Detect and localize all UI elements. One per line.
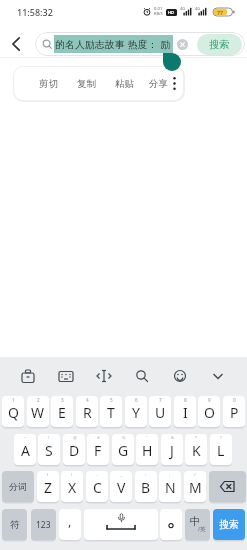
button[interactable]: ; (159, 471, 181, 502)
button[interactable]: ! (38, 434, 60, 465)
button[interactable]: : (135, 471, 157, 502)
button[interactable]: ~ (14, 434, 36, 465)
button[interactable] (17, 365, 39, 387)
button[interactable] (93, 365, 115, 387)
button[interactable]: 0 (223, 396, 245, 427)
button[interactable]: # (87, 434, 109, 465)
button[interactable]: 4 (76, 396, 98, 427)
staticText: C (93, 478, 102, 497)
staticText: 5 (110, 397, 113, 403)
button[interactable]: @ (63, 434, 85, 465)
staticText: KB/S (154, 11, 163, 16)
staticText: 9 (208, 397, 211, 403)
staticText: 符 (10, 519, 20, 531)
staticText: * (195, 435, 198, 441)
staticText: L (217, 441, 225, 460)
button[interactable] (169, 365, 191, 387)
button[interactable]: , (59, 509, 81, 540)
staticText: 1 (12, 397, 15, 403)
button[interactable] (207, 365, 229, 387)
button[interactable]: 分享 (144, 67, 172, 100)
staticText: 6 (135, 397, 138, 403)
staticText: K (192, 441, 201, 460)
button[interactable]: 粘贴 (110, 67, 138, 100)
button[interactable]: * (185, 434, 207, 465)
button[interactable]: 搜索 (197, 34, 242, 55)
staticText: X (68, 478, 77, 497)
button[interactable] (166, 67, 183, 100)
staticText: 3 (61, 397, 64, 403)
button[interactable]: 123 (31, 509, 56, 540)
button[interactable]: 3 (51, 396, 73, 427)
button[interactable] (177, 39, 188, 50)
staticText: 搜索 (209, 38, 230, 51)
staticText: 11:58:32 (17, 6, 53, 18)
staticText: : (145, 472, 147, 478)
button[interactable]: ( (37, 471, 59, 502)
button[interactable] (84, 509, 158, 540)
staticText: H (142, 441, 153, 460)
button[interactable]: & (161, 434, 183, 465)
button[interactable] (160, 509, 182, 540)
button[interactable]: - (86, 471, 108, 502)
staticText: /英 (198, 525, 206, 533)
staticText: 8 (184, 397, 187, 403)
staticText: 粘贴 (115, 78, 134, 90)
button[interactable]: ) (61, 471, 83, 502)
staticText: % (122, 435, 126, 441)
button[interactable]: ? (210, 434, 232, 465)
staticText: 搜索 (219, 518, 239, 531)
staticText: J (170, 441, 174, 460)
staticText: ( (47, 472, 49, 478)
staticText: Z (44, 478, 53, 497)
staticText: P (230, 403, 239, 422)
staticText: O (204, 403, 215, 422)
staticText: 0 (233, 397, 236, 403)
button[interactable]: 2 (27, 396, 49, 427)
staticText: _ (120, 472, 122, 478)
staticText: I (183, 403, 188, 422)
staticText: Y (132, 403, 140, 422)
staticText: R (83, 403, 92, 422)
button[interactable]: 9 (198, 396, 220, 427)
button[interactable] (209, 471, 246, 502)
staticText: 77 (217, 9, 223, 16)
button[interactable]: / (184, 471, 206, 502)
button[interactable]: 剪切 (34, 67, 62, 100)
button[interactable]: 分词 (2, 471, 34, 502)
button[interactable]: _ (110, 471, 132, 502)
button[interactable]: 符 (2, 509, 27, 540)
staticText: F (94, 441, 102, 460)
staticText: E (58, 403, 66, 422)
staticText: ? (220, 435, 222, 441)
button[interactable]: 的名人励志故事 热度： 励 (35, 32, 245, 56)
button[interactable]: 7 (149, 396, 171, 427)
button[interactable] (6, 34, 26, 54)
staticText: M (189, 478, 202, 497)
staticText: 4G (195, 6, 200, 11)
button[interactable]: 搜索 (213, 509, 245, 540)
staticText: ! (48, 435, 50, 441)
button[interactable]: ' (136, 434, 158, 465)
staticText: 剪切 (39, 78, 58, 90)
button[interactable]: % (112, 434, 134, 465)
button[interactable]: 5 (100, 396, 122, 427)
staticText: V (117, 478, 126, 497)
staticText: U (155, 403, 166, 422)
button[interactable]: 6 (125, 396, 147, 427)
staticText: 2 (37, 397, 40, 403)
staticText: # (97, 435, 100, 441)
button[interactable]: 8 (174, 396, 196, 427)
button[interactable] (55, 365, 77, 387)
staticText: N (165, 478, 176, 497)
staticText: / (194, 472, 196, 478)
staticText: W (31, 403, 45, 422)
staticText: ' (146, 435, 147, 441)
button[interactable] (131, 365, 153, 387)
staticText: 分享 (149, 78, 168, 90)
button[interactable]: 复制 (72, 67, 100, 100)
button[interactable]: 1 (2, 396, 24, 427)
staticText: D (69, 441, 80, 460)
staticText: 7 (159, 397, 162, 403)
button[interactable]: 中 (185, 509, 210, 540)
